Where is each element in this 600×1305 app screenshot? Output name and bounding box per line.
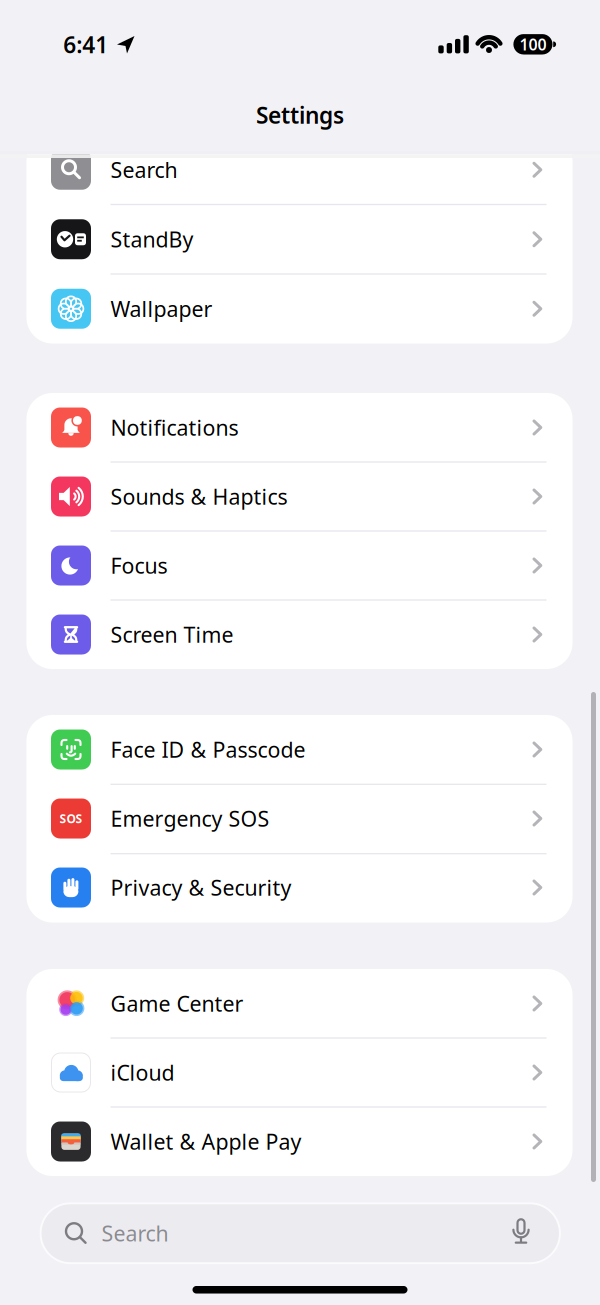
staticText: Face ID & Passcode [110, 735, 305, 764]
staticText: Emergency SOS [110, 804, 269, 833]
button[interactable]: Face ID & Passcode [26, 715, 572, 784]
staticText: Search [110, 156, 177, 184]
staticText: Settings [256, 100, 344, 130]
staticText: 100 [519, 34, 546, 55]
button[interactable]: SOS [26, 784, 572, 853]
button[interactable]: Search [26, 135, 572, 204]
button[interactable]: Wallpaper [26, 274, 572, 343]
button[interactable]: Voice Search [510, 1217, 532, 1249]
button[interactable]: Game Center [26, 969, 572, 1038]
button[interactable]: Privacy & Security [26, 853, 572, 922]
staticText: Screen Time [110, 620, 233, 649]
staticText: Game Center [110, 989, 243, 1018]
staticText: Wallet & Apple Pay [110, 1127, 301, 1156]
button[interactable]: Notifications [26, 393, 572, 462]
button[interactable]: Focus [26, 531, 572, 600]
staticText: Focus [110, 551, 167, 580]
button[interactable]: Screen Time [26, 600, 572, 669]
button[interactable]: Wallet & Apple Pay [26, 1107, 572, 1176]
staticText: StandBy [110, 225, 193, 253]
button[interactable]: Search [39, 1202, 561, 1264]
staticText: 6:41 [63, 29, 108, 59]
button[interactable]: iCloud [26, 1038, 572, 1107]
staticText: Notifications [110, 413, 238, 442]
staticText: Search [101, 1219, 168, 1247]
staticText: SOS [59, 810, 82, 826]
button[interactable]: Sounds & Haptics [26, 462, 572, 531]
button[interactable]: StandBy [26, 205, 572, 274]
staticText: iCloud [110, 1058, 174, 1087]
staticText: Wallpaper [110, 295, 212, 323]
staticText: Sounds & Haptics [110, 482, 287, 511]
staticText: Privacy & Security [110, 873, 291, 902]
